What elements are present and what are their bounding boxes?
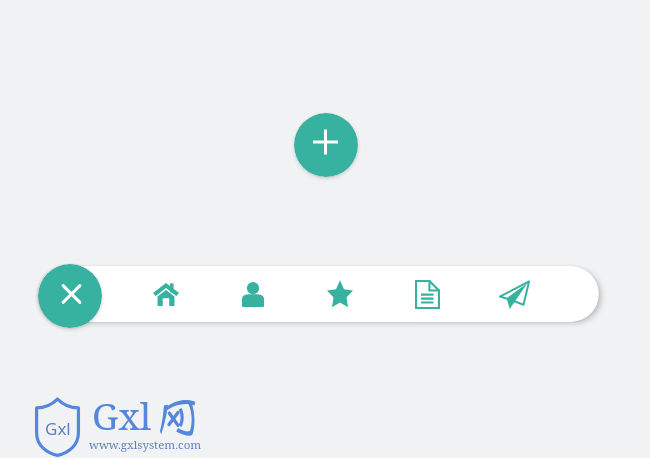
button[interactable]: Home [138,266,194,322]
button[interactable]: Add [294,113,358,177]
button[interactable]: Documents [399,266,455,322]
staticText: Gxl [45,417,71,440]
staticText: www.gxlsystem.com [89,437,202,453]
staticText: Gxl [92,390,152,440]
button[interactable]: Send [486,266,542,322]
button[interactable]: Close [38,264,102,328]
button[interactable]: Favorites [312,266,368,322]
button[interactable]: Profile [225,266,281,322]
